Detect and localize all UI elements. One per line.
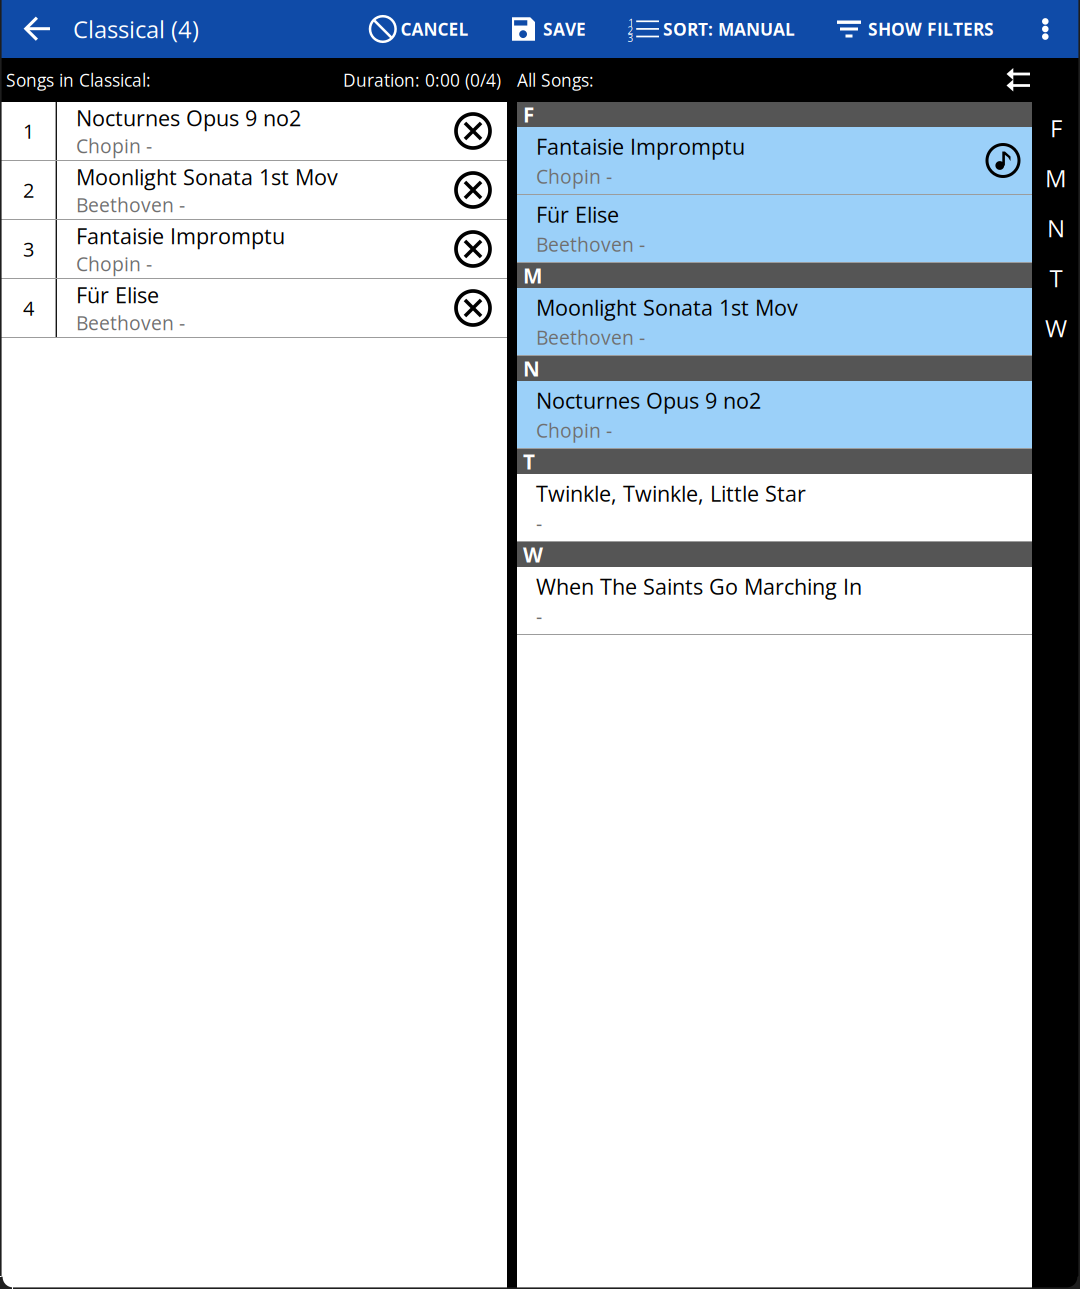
staticText: Beethoven -: [536, 324, 645, 350]
staticText: Chopin -: [76, 250, 152, 277]
staticText: Nocturnes Opus 9 no2: [76, 103, 301, 132]
staticText: 2: [628, 24, 634, 37]
staticText: Fantaisie Impromptu: [536, 132, 745, 161]
staticText: 1: [628, 16, 634, 30]
staticText: Moonlight Sonata 1st Mov: [76, 162, 338, 191]
button[interactable]: SAVE: [512, 0, 586, 58]
staticText: Songs in Classical:: [6, 68, 151, 92]
staticText: T: [1049, 262, 1062, 294]
button[interactable]: 4: [0, 279, 507, 338]
button[interactable]: M: [1032, 153, 1080, 203]
staticText: Chopin -: [536, 163, 612, 189]
staticText: Moonlight Sonata 1st Mov: [536, 293, 798, 322]
staticText: Classical (4): [73, 13, 199, 45]
staticText: N: [1047, 212, 1065, 244]
staticText: Beethoven -: [76, 309, 185, 336]
button[interactable]: 3: [0, 220, 507, 279]
button[interactable]: More options: [1028, 0, 1063, 58]
staticText: M: [1045, 162, 1067, 194]
button[interactable]: Classical (4): [67, 0, 205, 58]
staticText: SHOW FILTERS: [868, 17, 994, 41]
button[interactable]: 1: [0, 102, 507, 161]
button[interactable]: N: [1032, 203, 1080, 253]
staticText: Fantaisie Impromptu: [76, 221, 285, 250]
staticText: 3: [23, 235, 34, 263]
staticText: Beethoven -: [536, 231, 645, 257]
staticText: When The Saints Go Marching In: [536, 572, 862, 601]
staticText: Duration: 0:00 (0/4): [343, 68, 501, 92]
staticText: M: [523, 261, 542, 289]
staticText: W: [523, 540, 543, 568]
button[interactable]: Fantaisie Impromptu: [517, 127, 1032, 195]
button[interactable]: Nocturnes Opus 9 no2: [517, 381, 1032, 449]
staticText: Beethoven -: [76, 191, 185, 218]
button[interactable]: F: [1032, 103, 1080, 153]
staticText: W: [1045, 312, 1067, 344]
staticText: T: [523, 447, 535, 475]
button[interactable]: Twinkle, Twinkle, Little Star: [517, 474, 1032, 542]
staticText: CANCEL: [401, 17, 469, 41]
staticText: F: [523, 100, 534, 128]
staticText: Twinkle, Twinkle, Little Star: [536, 479, 806, 508]
button[interactable]: W: [1032, 303, 1080, 353]
staticText: SAVE: [543, 17, 586, 41]
staticText: SORT: MANUAL: [663, 17, 795, 41]
button[interactable]: When The Saints Go Marching In: [517, 567, 1032, 635]
staticText: N: [523, 354, 540, 382]
staticText: All Songs:: [517, 68, 594, 92]
button[interactable]: SHOW FILTERS: [837, 0, 994, 58]
button[interactable]: 2: [0, 161, 507, 220]
button[interactable]: T: [1032, 253, 1080, 303]
button[interactable]: Moonlight Sonata 1st Mov: [517, 288, 1032, 356]
staticText: 2: [23, 176, 34, 204]
staticText: -: [536, 603, 542, 629]
staticText: Chopin -: [536, 417, 612, 443]
button[interactable]: 1: [627, 0, 795, 58]
staticText: Nocturnes Opus 9 no2: [536, 386, 761, 415]
button[interactable]: CANCEL: [370, 0, 469, 58]
button[interactable]: Back: [13, 0, 60, 58]
staticText: Chopin -: [76, 132, 152, 159]
staticText: F: [1050, 112, 1062, 144]
button[interactable]: Move all songs: [996, 59, 1040, 100]
staticText: 4: [23, 294, 34, 322]
staticText: 1: [23, 117, 34, 145]
staticText: Für Elise: [76, 280, 159, 309]
staticText: 3: [628, 31, 634, 45]
staticText: Für Elise: [536, 200, 619, 229]
staticText: -: [536, 510, 542, 536]
button[interactable]: Für Elise: [517, 195, 1032, 263]
